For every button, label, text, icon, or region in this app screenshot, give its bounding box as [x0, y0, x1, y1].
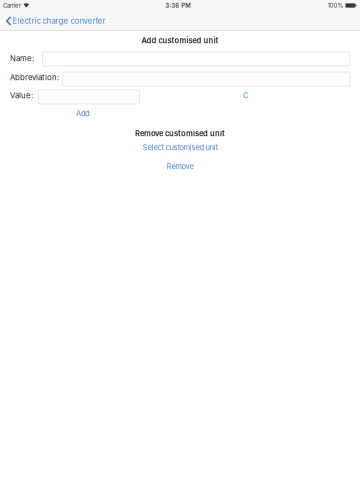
staticText: 100%: [327, 2, 343, 9]
staticText: Add customised unit: [141, 36, 218, 45]
staticText: Electric charge converter: [12, 16, 105, 26]
staticText: Remove customised unit: [135, 129, 225, 138]
staticText: Carrier: [3, 2, 21, 9]
staticText: Value:: [10, 91, 33, 100]
staticText: Abbreviation:: [10, 73, 59, 82]
staticText: 3:36 PM: [165, 2, 191, 9]
staticText: Remove: [166, 162, 193, 171]
button[interactable]: Select customised unit: [142, 142, 217, 153]
staticText: C: [243, 91, 248, 100]
button[interactable]: Remove: [166, 161, 193, 172]
staticText: Select customised unit: [142, 143, 217, 152]
staticText: Add: [76, 109, 89, 118]
staticText: Name:: [10, 54, 34, 63]
button[interactable]: Electric charge converter: [0, 11, 111, 31]
button[interactable]: Add: [76, 108, 89, 119]
button[interactable]: C: [237, 89, 253, 101]
